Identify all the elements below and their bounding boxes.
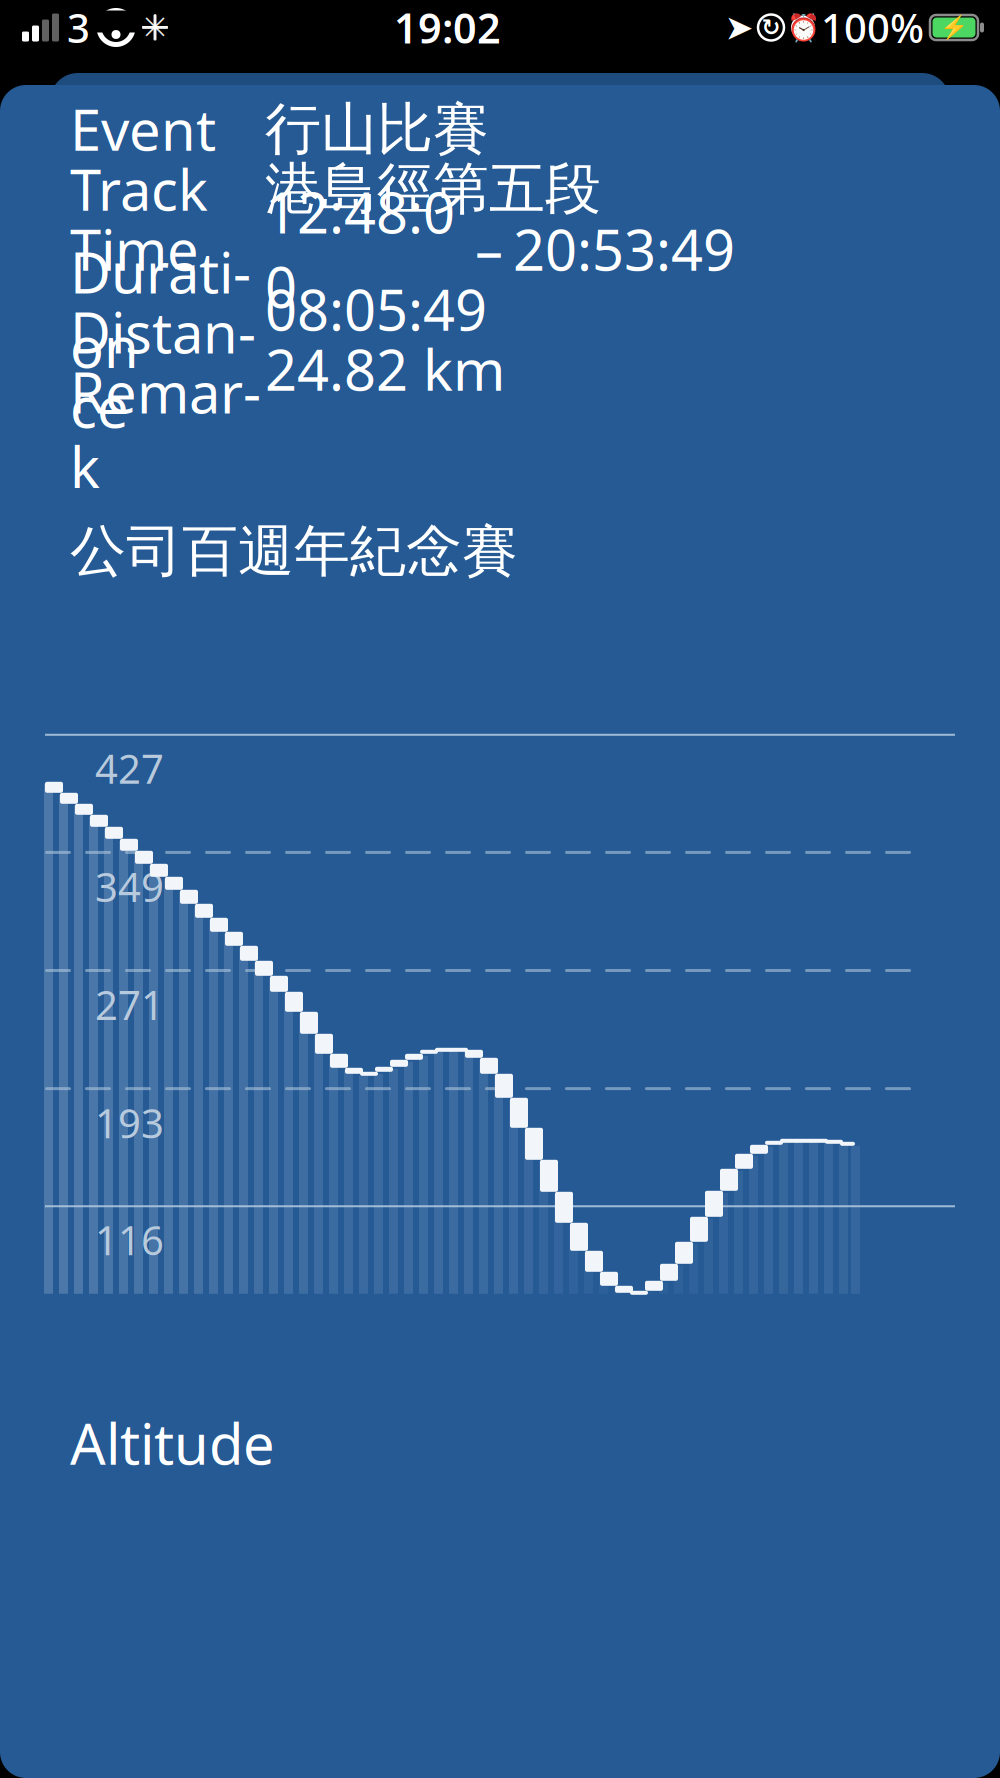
staticText: 港島徑第五段 <box>265 155 601 223</box>
staticText: 08:05:49 <box>265 272 487 346</box>
staticText: ✳ <box>140 8 169 47</box>
staticText: Altitude <box>70 1406 275 1480</box>
staticText: ⚡ <box>940 15 968 40</box>
staticText: Time <box>70 212 199 286</box>
staticText: 公司百週年紀念賽 <box>70 517 518 586</box>
staticText: Track <box>70 152 208 226</box>
staticText: 24.82 km <box>265 332 505 406</box>
staticText: 12:48:00 <box>265 175 455 323</box>
staticText: Remark <box>70 355 261 503</box>
staticText: 19:02 <box>394 0 501 55</box>
staticText: – <box>475 212 503 286</box>
staticText: Duration <box>70 235 251 383</box>
staticText: 193 <box>95 1096 164 1149</box>
staticText: ➤ <box>724 8 753 47</box>
staticText: Distance <box>70 295 256 443</box>
staticText: 行山比賽 <box>265 95 489 163</box>
staticText: 3 <box>67 1 90 54</box>
staticText: 427 <box>95 742 164 795</box>
staticText: 100% <box>821 1 924 54</box>
staticText: 271 <box>95 978 164 1031</box>
staticText: ⏰ <box>786 12 819 43</box>
staticText: ↻ <box>761 15 780 40</box>
staticText: 20:53:49 <box>513 212 735 286</box>
staticText: 349 <box>95 860 164 913</box>
staticText: 116 <box>95 1213 164 1266</box>
staticText: Event <box>70 92 216 166</box>
